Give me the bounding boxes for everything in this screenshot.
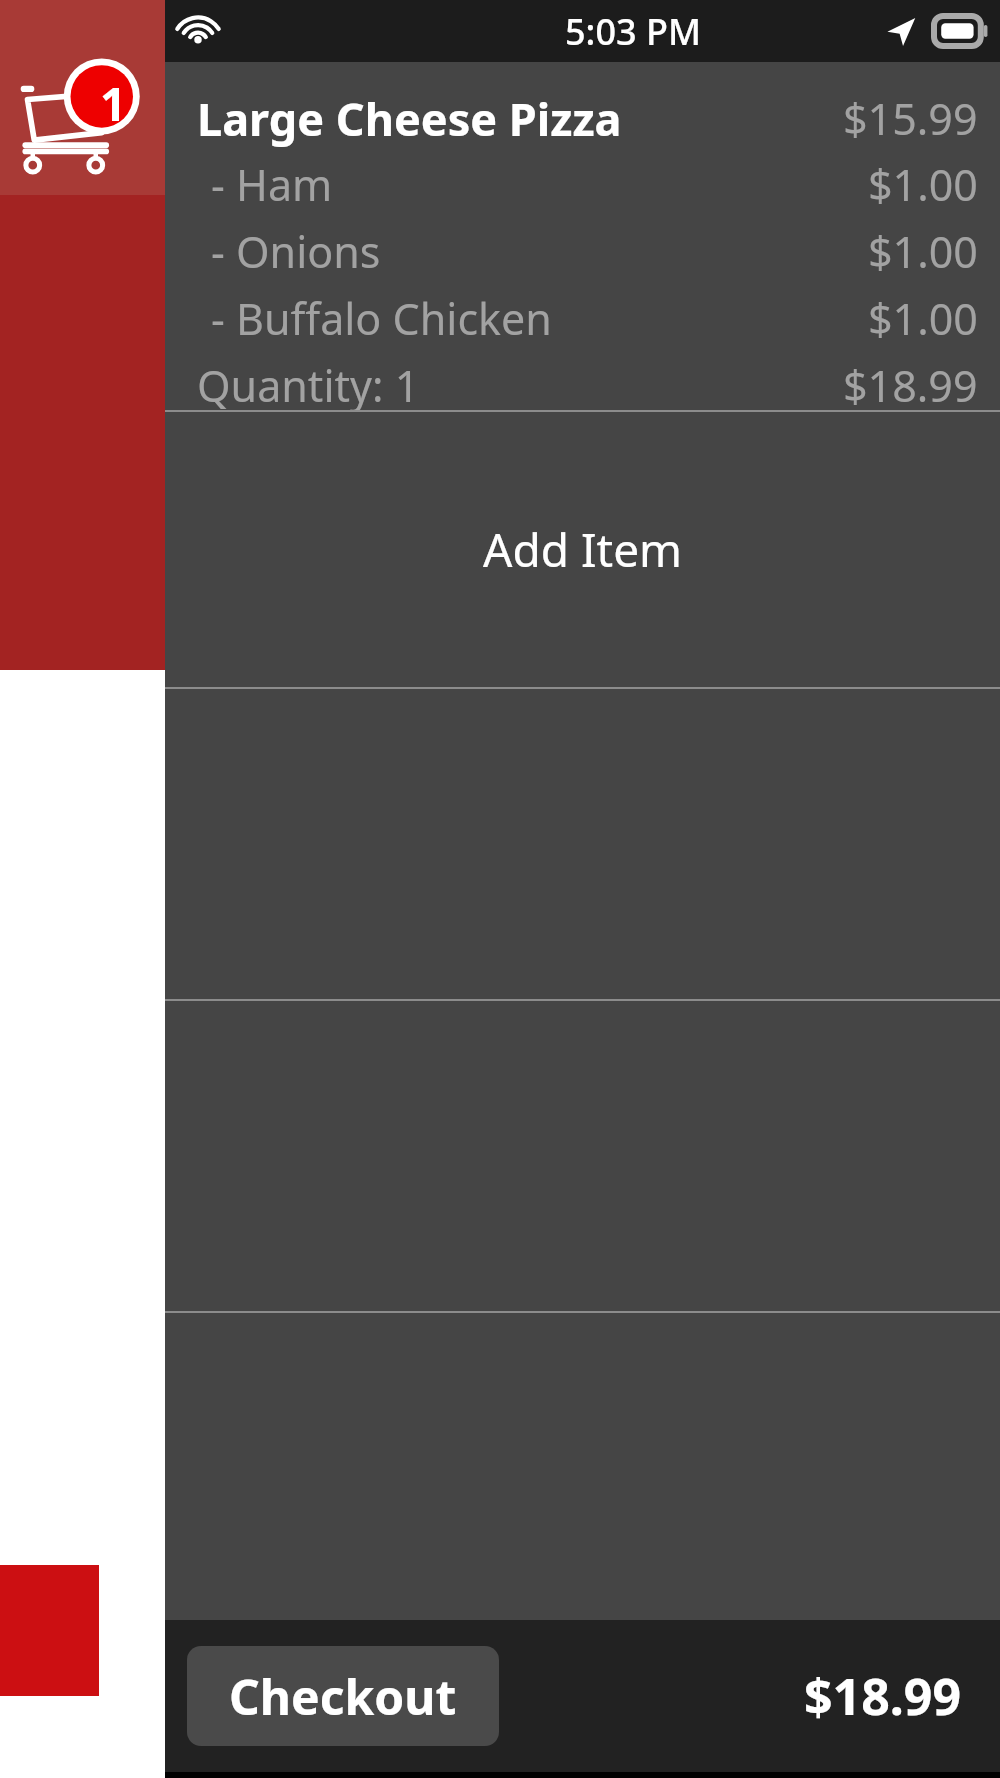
- staticText: - Onions: [211, 222, 381, 281]
- button[interactable]: Large Cheese Pizza: [165, 62, 1000, 410]
- button[interactable]: Checkout: [187, 1646, 499, 1746]
- staticText: $1.00: [868, 155, 978, 214]
- staticText: Checkout: [229, 1664, 457, 1729]
- staticText: $15.99: [843, 89, 978, 148]
- staticText: 5:03 PM: [565, 7, 701, 56]
- staticText: $18.99: [804, 1662, 962, 1730]
- staticText: $1.00: [868, 222, 978, 281]
- staticText: 1: [100, 72, 127, 135]
- staticText: Large Cheese Pizza: [197, 88, 622, 149]
- button[interactable]: Shopping cart, 1 item: [8, 62, 158, 187]
- staticText: Add Item: [483, 518, 683, 581]
- staticText: $1.00: [868, 289, 978, 348]
- staticText: Quantity: 1: [197, 356, 420, 410]
- staticText: - Ham: [211, 155, 333, 214]
- staticText: $18.99: [843, 356, 978, 410]
- button[interactable]: Add Item: [165, 412, 1000, 687]
- staticText: - Buffalo Chicken: [211, 289, 552, 348]
